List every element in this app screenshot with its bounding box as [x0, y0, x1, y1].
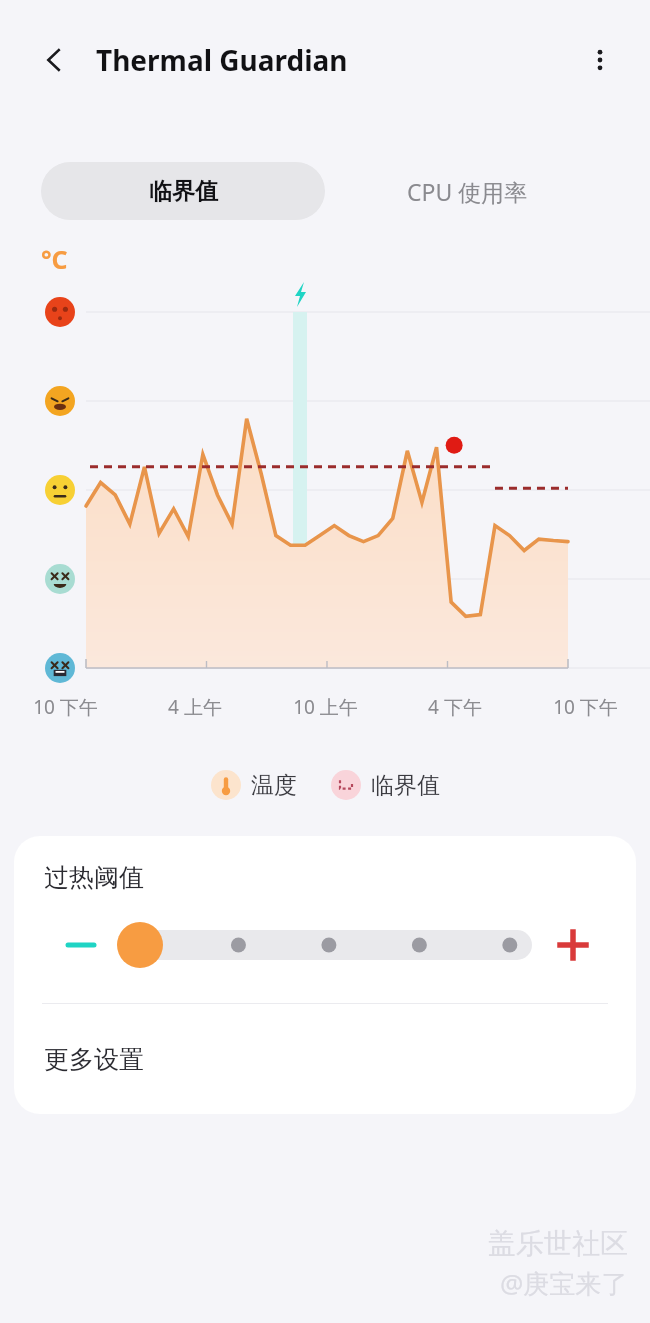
staticText: @庚宝来了 — [500, 1265, 628, 1301]
button[interactable]: 过热阈值 — [14, 836, 636, 1003]
staticText: 10 下午 — [553, 694, 618, 720]
staticText: 盖乐世社区 — [488, 1226, 628, 1261]
button[interactable]: Increase — [546, 918, 600, 972]
staticText: 临界值 — [149, 177, 218, 206]
button[interactable]: Threshold level — [114, 922, 540, 968]
button[interactable]: 温度 — [207, 766, 301, 804]
staticText: 4 上午 — [168, 694, 222, 720]
button[interactable]: More options — [572, 32, 628, 88]
staticText: 更多设置 — [44, 1044, 144, 1075]
staticText: 10 上午 — [293, 694, 358, 720]
button[interactable]: 更多设置 — [14, 1004, 636, 1114]
button[interactable]: 临界值 — [41, 162, 325, 220]
staticText: 4 下午 — [428, 694, 482, 720]
staticText: °C — [41, 242, 68, 276]
button[interactable]: CPU 使用率 — [325, 162, 609, 220]
staticText: 温度 — [251, 771, 297, 800]
staticText: 10 下午 — [33, 694, 98, 720]
staticText: Thermal Guardian — [96, 41, 348, 79]
staticText: 过热阈值 — [44, 862, 144, 893]
button[interactable]: 临界值 — [327, 766, 444, 804]
staticText: CPU 使用率 — [407, 176, 528, 207]
button[interactable]: Decrease — [54, 918, 108, 972]
staticText: 临界值 — [371, 771, 440, 800]
button[interactable]: Back — [26, 32, 82, 88]
